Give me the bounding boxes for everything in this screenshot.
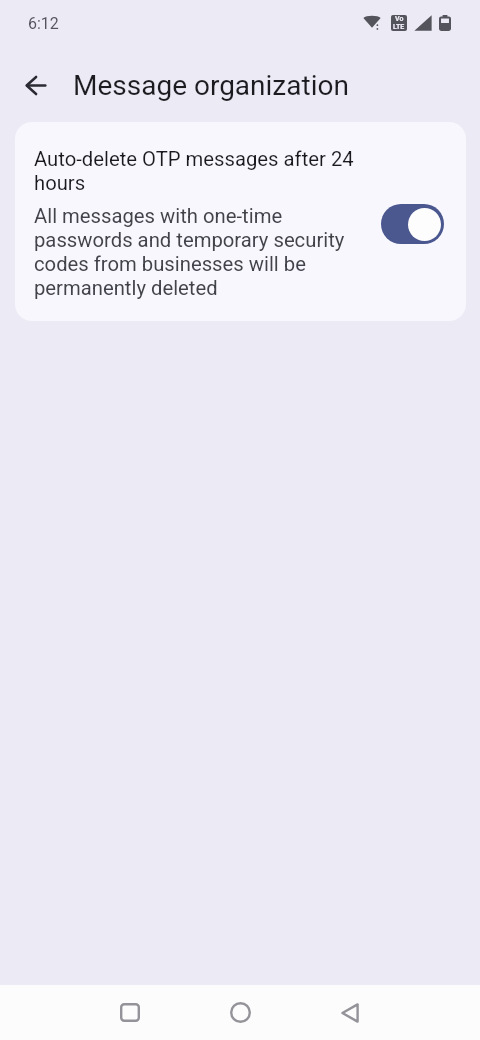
staticText: Message organization bbox=[73, 69, 349, 102]
button[interactable]: Auto-delete OTP messages after 24 hours bbox=[15, 122, 466, 321]
button[interactable]: Auto-delete OTP messages toggle bbox=[381, 204, 444, 244]
button[interactable]: Back bbox=[11, 62, 58, 109]
staticText: All messages with one-time passwords and… bbox=[34, 204, 364, 300]
staticText: LTE bbox=[393, 23, 405, 31]
button[interactable]: Back bbox=[313, 985, 387, 1040]
button[interactable]: Home bbox=[203, 985, 277, 1040]
staticText: Vo bbox=[395, 15, 404, 23]
staticText: Auto-delete OTP messages after 24 hours bbox=[34, 147, 364, 195]
button[interactable]: Recents bbox=[93, 985, 167, 1040]
staticText: 6:12 bbox=[28, 14, 59, 33]
